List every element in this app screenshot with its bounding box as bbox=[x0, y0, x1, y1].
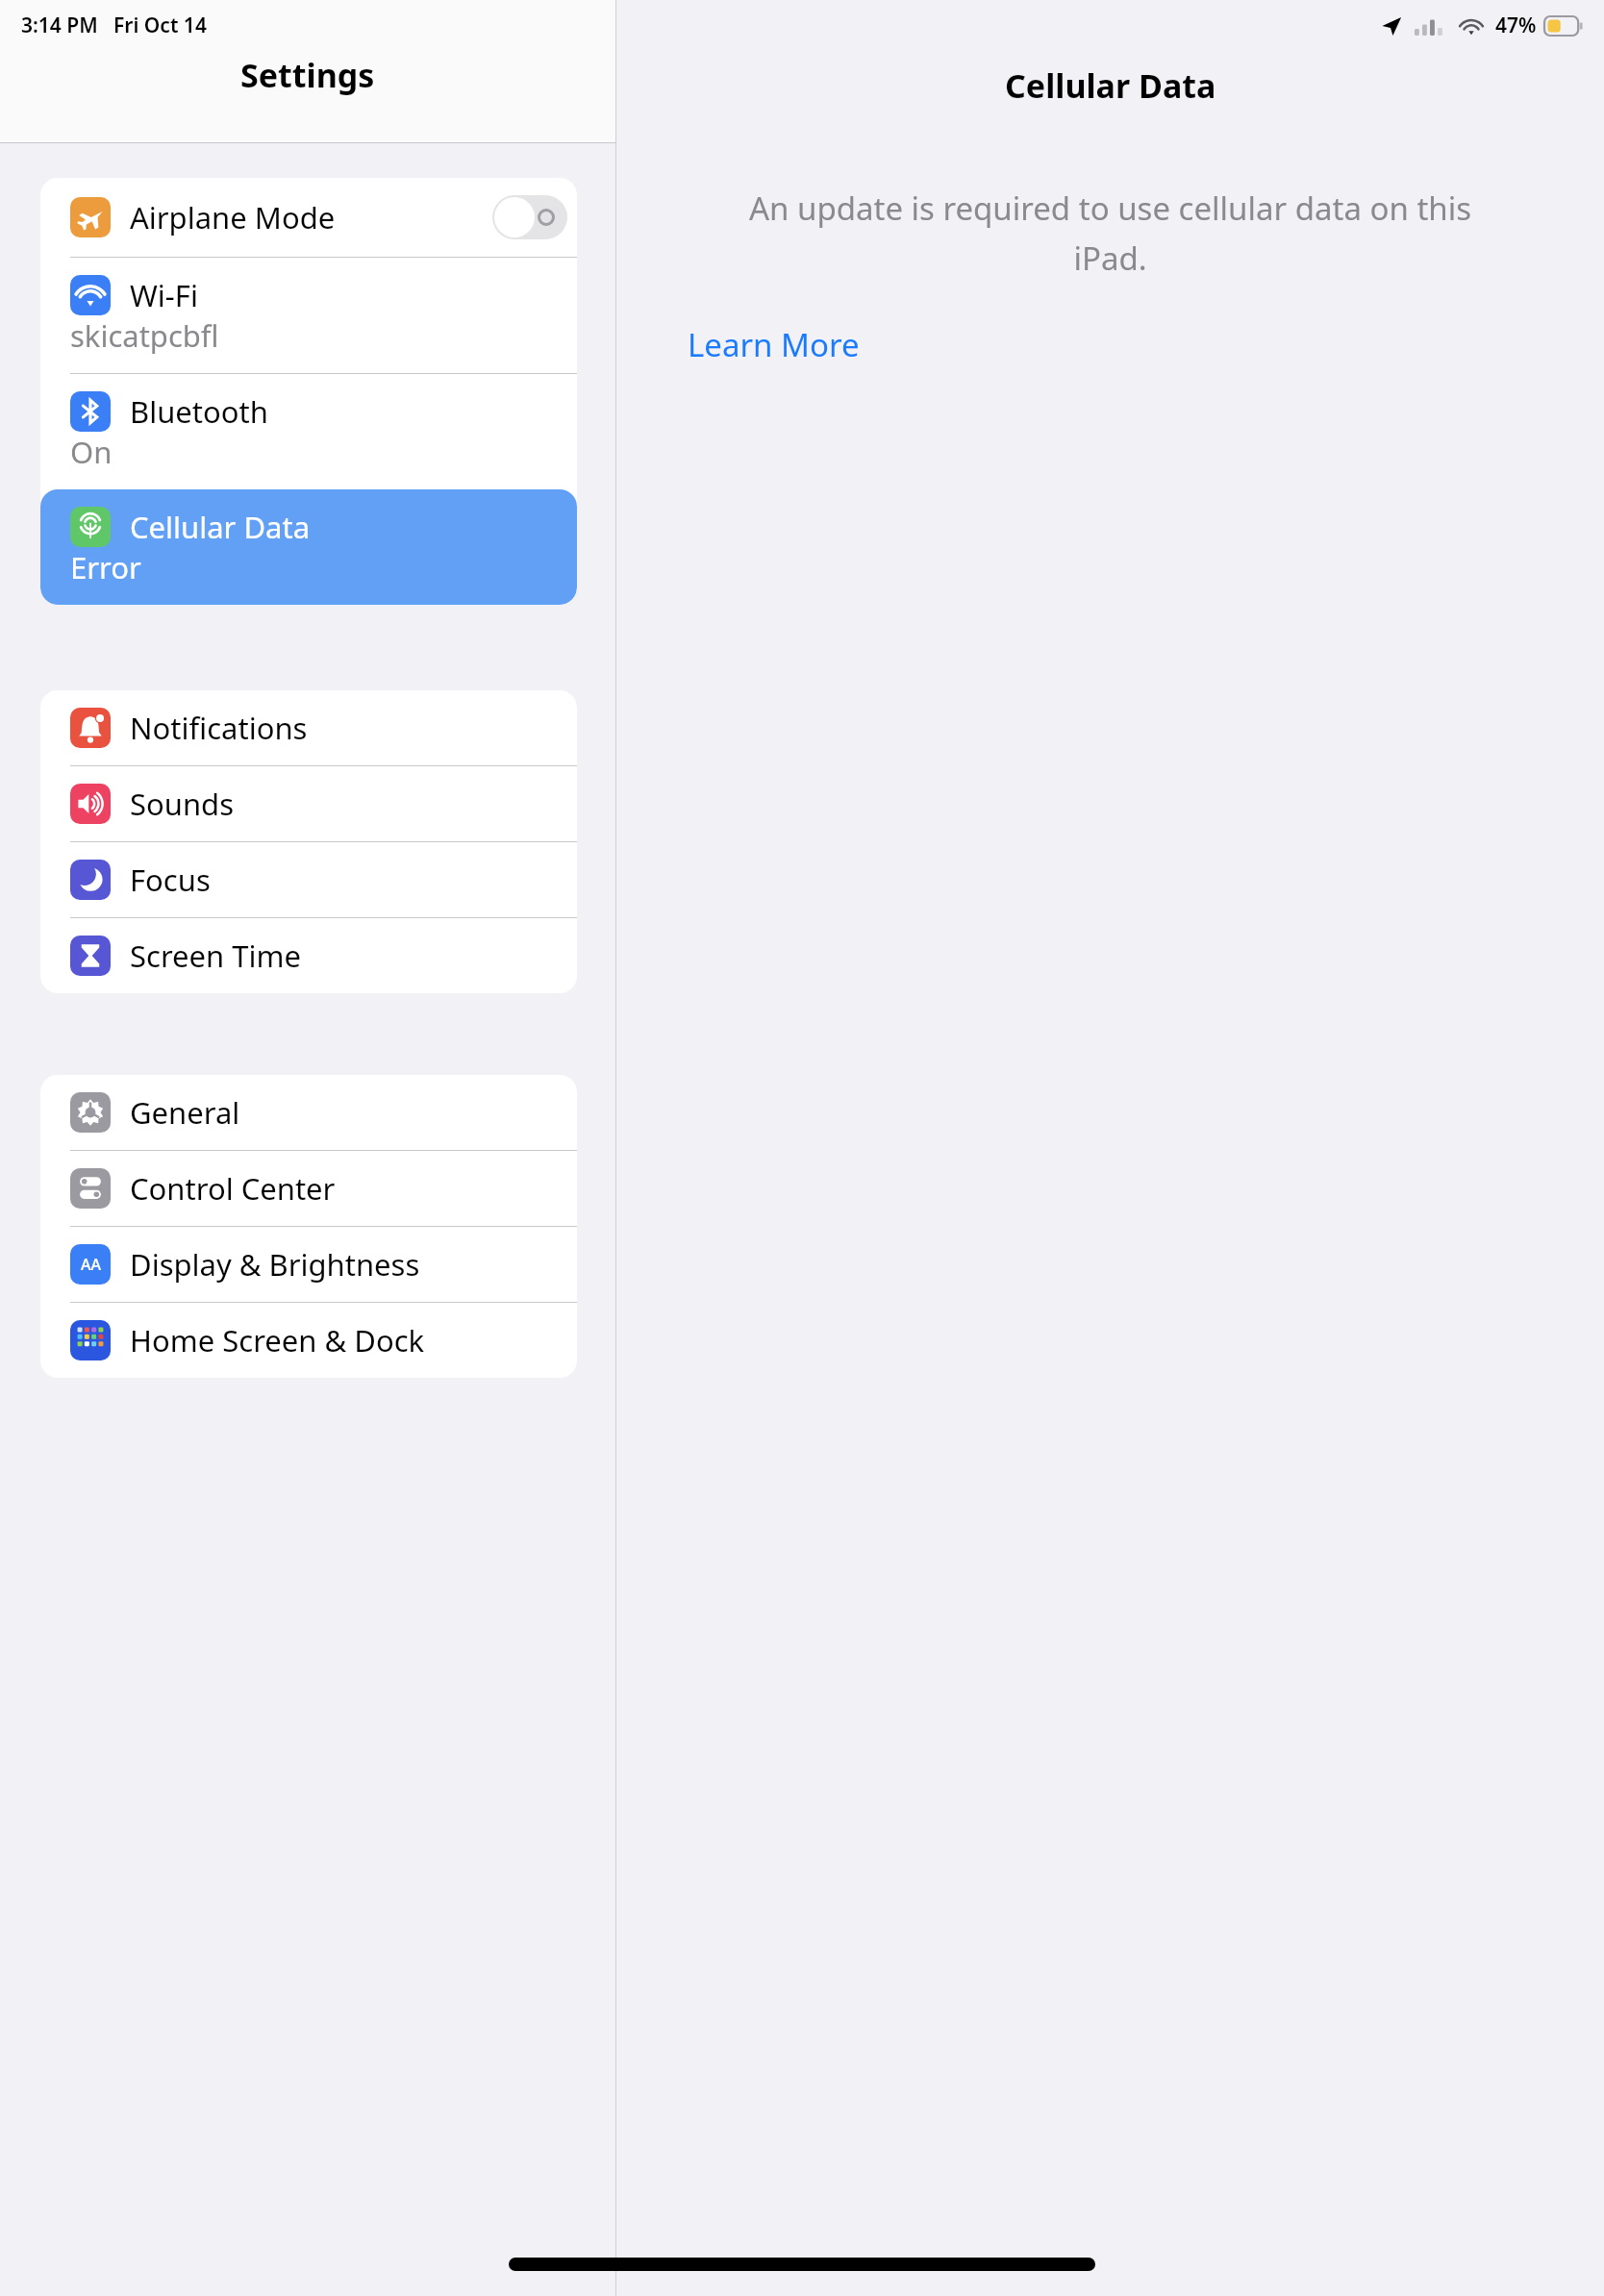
button[interactable]: Cellular Data bbox=[40, 489, 577, 605]
staticText: skicatpcbfl bbox=[70, 315, 219, 356]
staticText: Notifications bbox=[130, 708, 308, 748]
staticText: Cellular Data bbox=[1005, 63, 1216, 108]
staticText: An update is required to use cellular da… bbox=[709, 187, 1512, 279]
staticText: Fri Oct 14 bbox=[113, 12, 207, 39]
button[interactable]: Learn More bbox=[688, 323, 860, 366]
button[interactable]: Wi-Fi bbox=[40, 258, 577, 373]
staticText: Error bbox=[70, 547, 141, 587]
staticText: Home Screen & Dock bbox=[130, 1320, 425, 1360]
staticText: Airplane Mode bbox=[130, 197, 336, 237]
button[interactable]: Sounds bbox=[40, 766, 577, 841]
staticText: On bbox=[70, 432, 113, 472]
button[interactable]: Notifications bbox=[40, 690, 577, 765]
button[interactable]: Bluetooth bbox=[40, 374, 577, 489]
button[interactable]: Airplane Mode toggle bbox=[492, 195, 567, 239]
staticText: Screen Time bbox=[130, 936, 301, 976]
staticText: Focus bbox=[130, 860, 211, 900]
staticText: Learn More bbox=[688, 323, 860, 366]
staticText: Bluetooth bbox=[130, 391, 268, 432]
button[interactable]: Home Screen & Dock bbox=[40, 1303, 577, 1378]
staticText: Wi-Fi bbox=[130, 275, 198, 315]
staticText: AA bbox=[81, 1254, 101, 1275]
staticText: 47% bbox=[1495, 12, 1537, 39]
button[interactable]: AA bbox=[40, 1227, 577, 1302]
button[interactable]: Focus bbox=[40, 842, 577, 917]
button[interactable]: Airplane Mode bbox=[40, 178, 577, 257]
staticText: Settings bbox=[240, 53, 375, 97]
staticText: Cellular Data bbox=[130, 507, 311, 547]
staticText: Sounds bbox=[130, 784, 235, 824]
button[interactable]: Screen Time bbox=[40, 918, 577, 993]
staticText: Display & Brightness bbox=[130, 1244, 420, 1285]
staticText: Control Center bbox=[130, 1168, 336, 1209]
staticText: General bbox=[130, 1092, 240, 1133]
button[interactable]: Control Center bbox=[40, 1151, 577, 1226]
staticText: 3:14 PM bbox=[21, 12, 98, 39]
button[interactable]: General bbox=[40, 1075, 577, 1150]
